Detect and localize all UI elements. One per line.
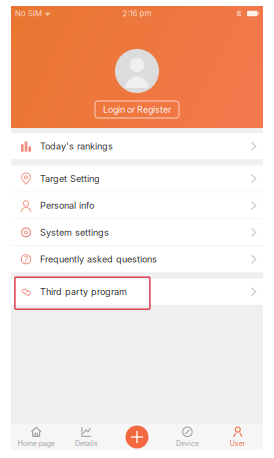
staticText: Details: [75, 439, 98, 448]
staticText: Today's rankings: [40, 141, 113, 152]
staticText: Target Setting: [40, 173, 100, 184]
button[interactable]: Third party program: [11, 278, 263, 305]
button[interactable]: Personal info: [11, 192, 263, 219]
button[interactable]: Add: [125, 425, 148, 448]
button[interactable]: Device: [162, 424, 213, 450]
staticText: Login or Register: [103, 104, 171, 115]
button[interactable]: Details: [61, 424, 112, 450]
staticText: Personal info: [40, 200, 94, 211]
button[interactable]: Home page: [11, 424, 61, 450]
staticText: System settings: [40, 227, 109, 238]
staticText: Device: [176, 439, 199, 448]
staticText: Frequently asked questions: [40, 254, 157, 265]
button[interactable]: Target Setting: [11, 165, 263, 192]
staticText: 2:16 pm: [122, 9, 151, 18]
button[interactable]: System settings: [11, 219, 263, 246]
button[interactable]: Today's rankings: [11, 133, 263, 159]
button[interactable]: Login or Register: [95, 101, 179, 118]
staticText: Third party program: [40, 286, 127, 297]
staticText: Home page: [18, 439, 55, 448]
staticText: No SIM: [15, 9, 42, 18]
staticText: User: [230, 439, 246, 448]
button[interactable]: ?: [11, 246, 263, 272]
staticText: ?: [24, 253, 28, 265]
button[interactable]: User: [213, 424, 263, 450]
